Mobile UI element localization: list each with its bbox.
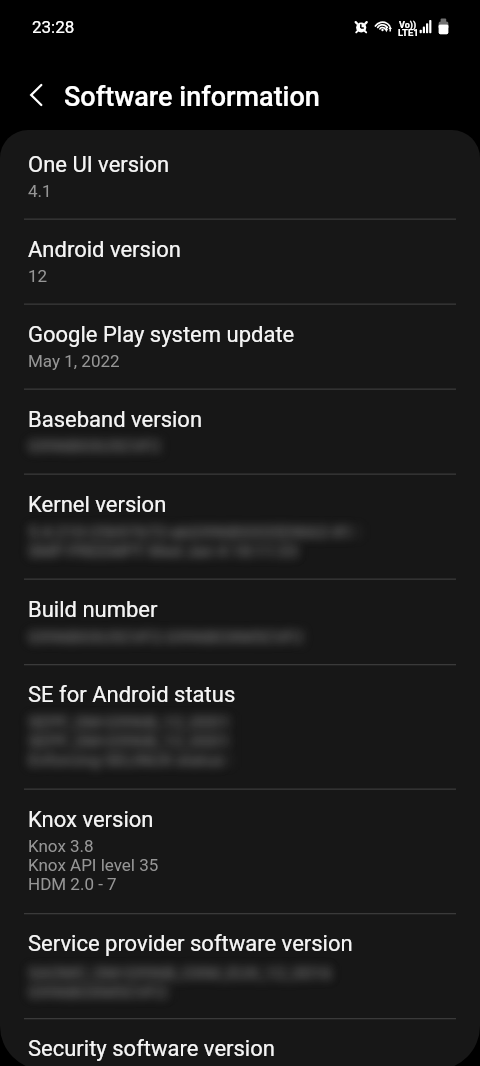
staticText: G996BXXU5CVF2 [28, 436, 162, 456]
staticText: Build number [28, 597, 158, 623]
button[interactable] [0, 474, 480, 579]
staticText: SE for Android status [28, 682, 236, 708]
staticText: Software information [64, 81, 320, 113]
staticText: SAOMC_SM-G996B_OXM_EUX_12_0016 [28, 963, 332, 983]
staticText: Knox API level 35 [28, 855, 159, 875]
button[interactable] [0, 130, 480, 219]
staticText: 5.4.210-25697672-abG996BXXS5DWA3 #1 [28, 522, 352, 542]
staticText: SEPF_SM-G996B_12_0001 [28, 731, 229, 751]
staticText: Service provider software version [28, 931, 353, 957]
staticText: One UI version [28, 152, 170, 178]
button[interactable] [0, 1018, 480, 1066]
staticText: SMP PREEMPT Wed Jan 4 18:11:33 [28, 541, 298, 561]
button[interactable] [0, 304, 480, 389]
staticText: G996BXXU5CVF2.G996BOXM5CVF2 [28, 627, 305, 647]
staticText: Google Play system update [28, 322, 295, 348]
staticText: Security software version [28, 1036, 275, 1062]
staticText: Vo)) [399, 20, 417, 31]
staticText: 23:28 [32, 17, 75, 37]
staticText: Knox version [28, 807, 154, 833]
staticText: SEPF_SM-G996B_12_0001 [28, 712, 229, 732]
staticText: 4.1 [28, 181, 52, 201]
staticText: 12 [28, 266, 48, 286]
staticText: Android version [28, 237, 181, 263]
button[interactable] [0, 789, 480, 914]
button[interactable] [0, 219, 480, 304]
staticText: May 1, 2022 [28, 351, 120, 371]
staticText: LTE1 [398, 27, 419, 38]
button[interactable] [0, 913, 480, 1018]
button[interactable] [0, 664, 480, 789]
staticText: Knox 3.8 [28, 836, 94, 856]
button[interactable] [0, 389, 480, 474]
button[interactable] [0, 579, 480, 665]
staticText: Enforcing SELINUX status [28, 750, 224, 770]
staticText: Baseband version [28, 407, 203, 433]
staticText: HDM 2.0 - 7 [28, 874, 117, 894]
staticText: G996BOXM5CVF2 [28, 982, 167, 1002]
button[interactable]: Back [14, 73, 58, 117]
staticText: Kernel version [28, 492, 167, 518]
